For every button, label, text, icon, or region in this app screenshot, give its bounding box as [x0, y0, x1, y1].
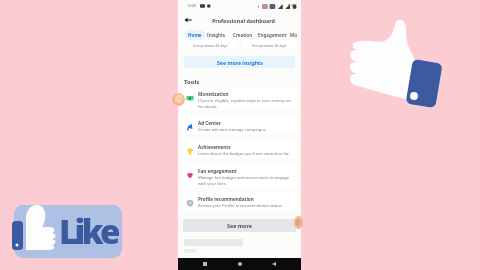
staticText: Engagement — [258, 32, 287, 38]
button[interactable]: Back — [181, 11, 194, 29]
staticText: 13:40 — [187, 3, 197, 8]
button[interactable]: Fan engagement — [182, 164, 297, 187]
staticText: Learn about the badges you have earned s… — [198, 151, 295, 157]
button[interactable]: Engagement — [258, 30, 287, 40]
staticText: Like — [59, 209, 117, 254]
button[interactable]: Profile recommendation — [182, 192, 297, 210]
button[interactable]: Achievements — [182, 140, 297, 158]
staticText: Home — [188, 32, 202, 38]
button[interactable]: Ad Center — [182, 116, 297, 134]
staticText: Tools — [184, 78, 200, 86]
staticText: from previous 28 days — [193, 43, 228, 47]
button[interactable]: from previous 28 days — [183, 40, 237, 49]
staticText: Achievements — [198, 144, 231, 150]
staticText: from previous 28 days — [252, 43, 287, 47]
staticText: 51% — [288, 3, 296, 8]
staticText: Mo — [290, 32, 298, 38]
button[interactable]: Recents — [197, 258, 213, 270]
button[interactable]: Home — [185, 30, 205, 40]
staticText: Ad Center — [198, 120, 221, 126]
staticText: Review your Profile recommendation statu… — [198, 203, 295, 209]
other: Like — [340, 15, 470, 125]
button[interactable]: Creation — [233, 30, 253, 40]
button[interactable]: Like — [12, 202, 124, 260]
button[interactable]: Home — [232, 258, 248, 270]
button[interactable]: See more — [183, 219, 296, 232]
staticText: Fan engagement — [198, 168, 237, 174]
staticText: Creation — [233, 32, 253, 38]
button[interactable]: Mo — [290, 30, 298, 40]
staticText: Professional dashboard — [212, 17, 276, 24]
button[interactable]: Insights — [207, 30, 226, 40]
staticText: Insights — [207, 32, 226, 38]
staticText: Manage fan badges and access tools to en… — [198, 175, 295, 186]
staticText: See more — [227, 222, 252, 229]
button[interactable]: See more insights — [184, 56, 295, 68]
staticText: Monetization — [198, 91, 229, 97]
button[interactable]: Monetization — [182, 87, 297, 110]
staticText: Profile recommendation — [198, 196, 254, 202]
staticText: If you're eligible, explore ways to earn… — [198, 98, 295, 109]
staticText: See more insights — [217, 59, 263, 66]
button[interactable]: Back — [266, 258, 282, 270]
button[interactable]: from previous 28 days — [242, 40, 296, 49]
staticText: Create ads and manage campaigns. — [198, 127, 295, 133]
